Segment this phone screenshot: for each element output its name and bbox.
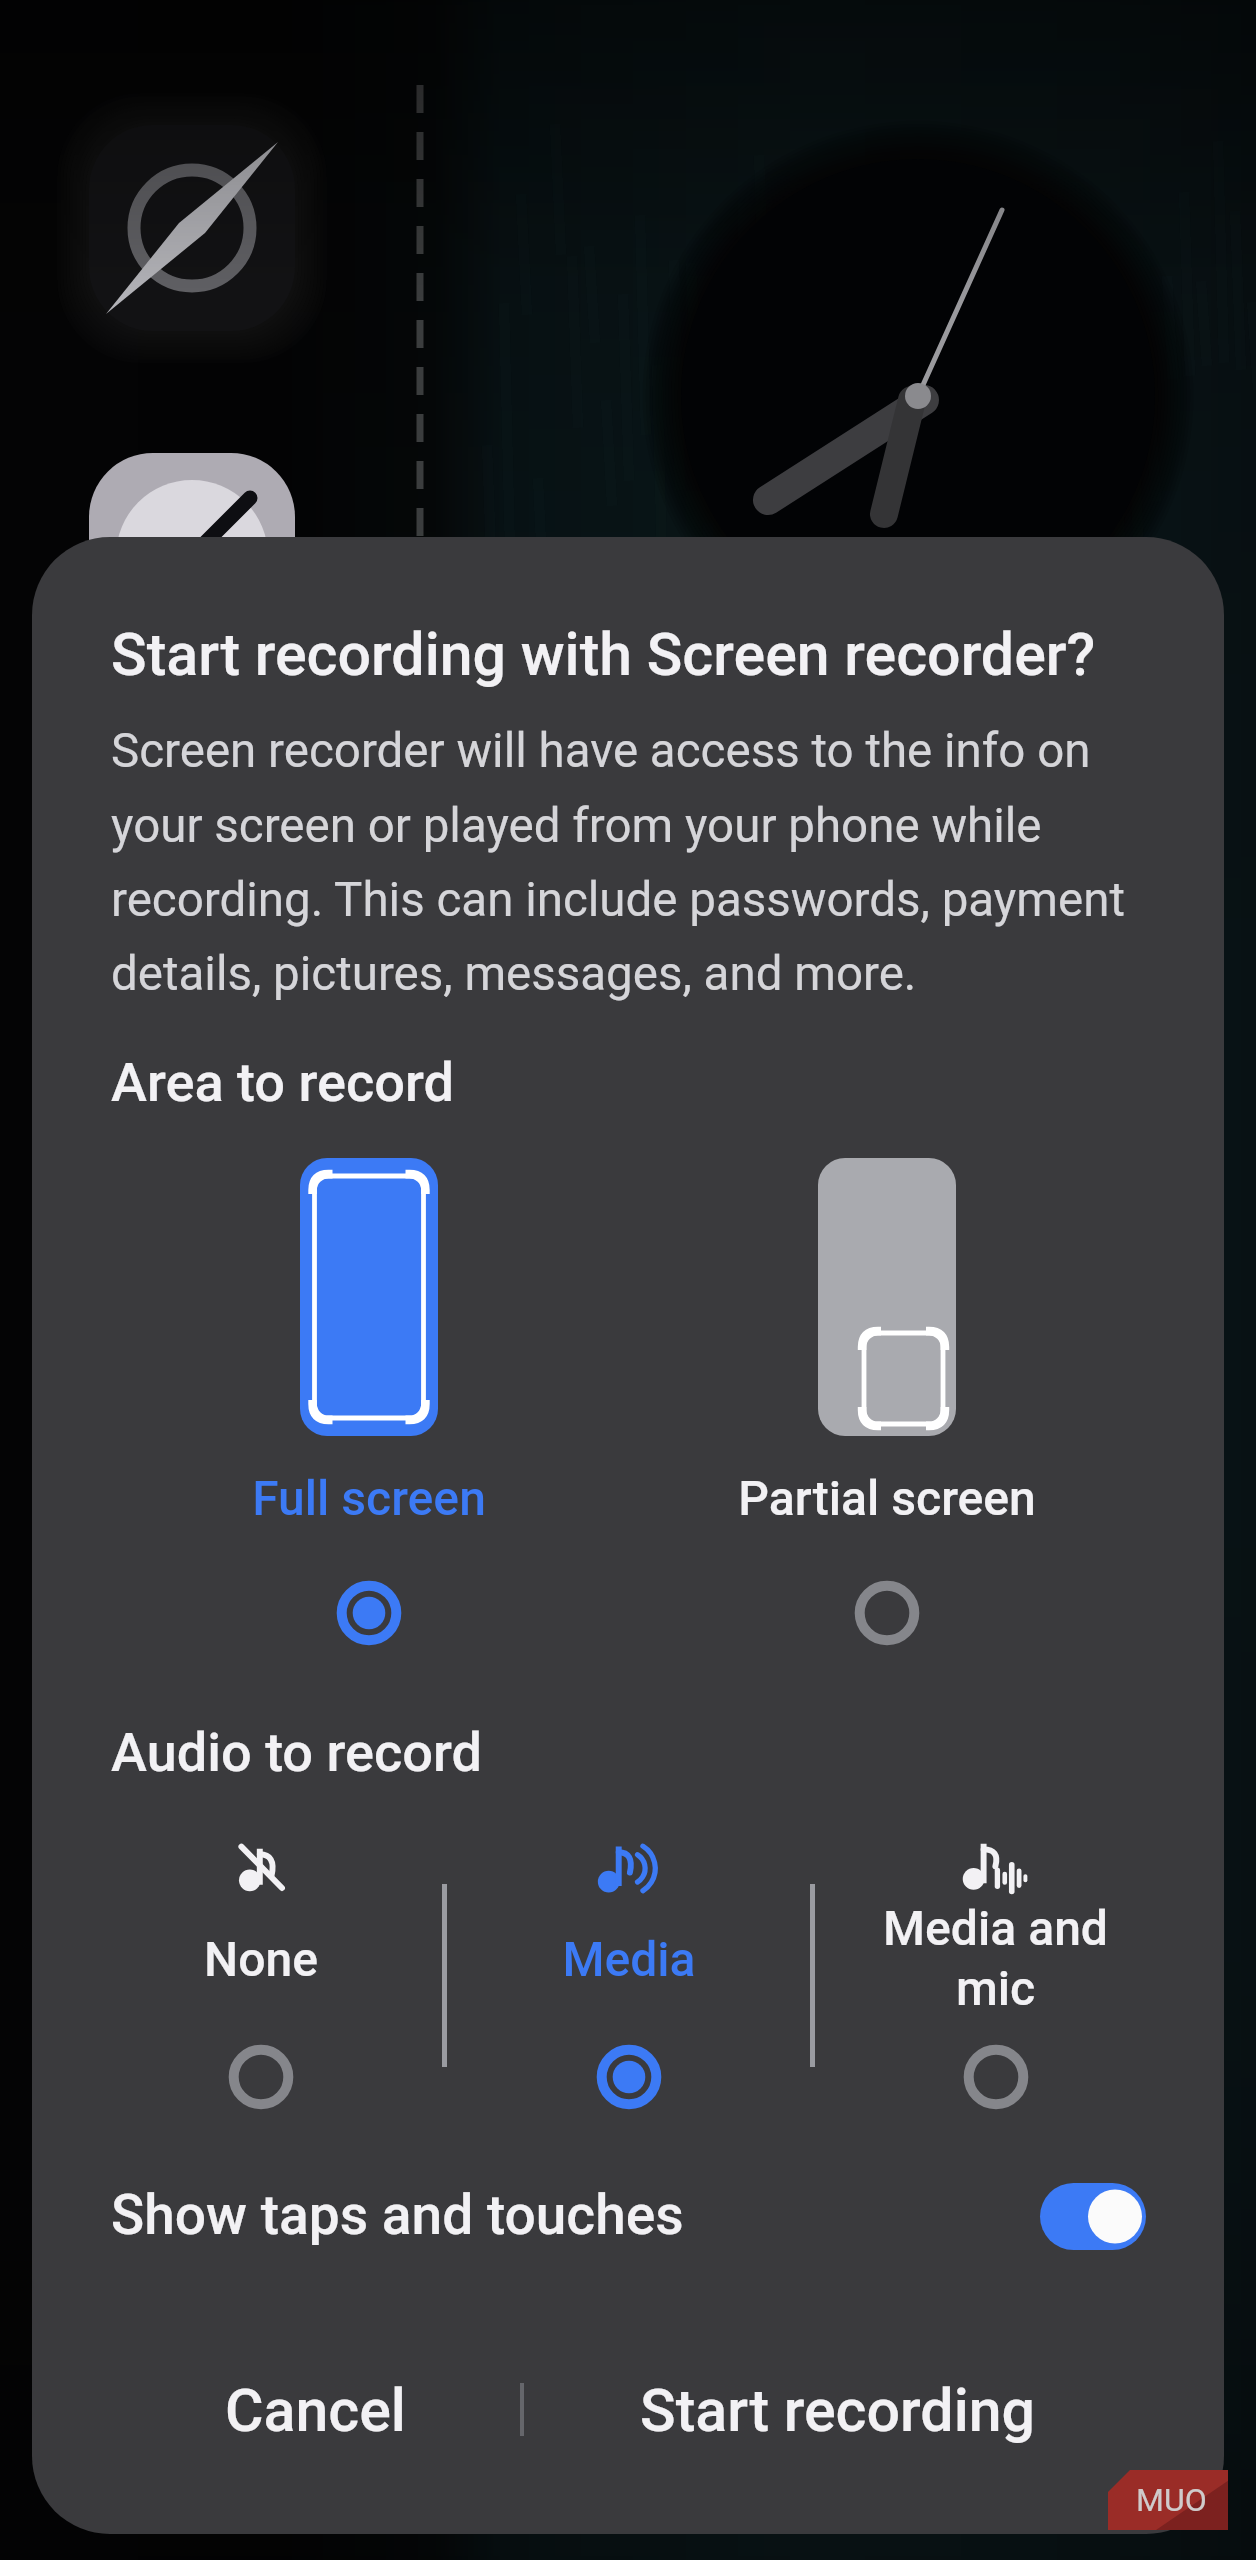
button[interactable]: Show taps and touches [1040, 2183, 1146, 2250]
staticText: Start recording [640, 2376, 1035, 2445]
staticText: MUO [1136, 2481, 1207, 2519]
button[interactable]: Partial screen [628, 1158, 1146, 1649]
button[interactable]: Full screen [110, 1158, 628, 1649]
staticText: Show taps and touches [111, 2183, 684, 2247]
button[interactable]: Media and mic [812, 1800, 1179, 2130]
staticText: Full screen [252, 1470, 486, 1526]
button[interactable]: Media [445, 1800, 812, 2130]
staticText: Partial screen [738, 1470, 1036, 1526]
staticText: Media [562, 1931, 696, 1987]
staticText: Start recording with Screen recorder? [111, 620, 1171, 689]
staticText: Media and mic [883, 1900, 1108, 2017]
staticText: Area to record [111, 1051, 454, 1114]
staticText: Audio to record [111, 1721, 483, 1784]
button[interactable]: None [77, 1800, 445, 2130]
button[interactable]: Show taps and touches [32, 2150, 1224, 2280]
staticText: Cancel [225, 2376, 406, 2445]
staticText: None [204, 1931, 318, 1987]
button[interactable]: Start recording [594, 2350, 1081, 2462]
button[interactable]: Cancel [180, 2350, 451, 2462]
staticText: Screen recorder will have access to the … [111, 723, 1151, 1002]
